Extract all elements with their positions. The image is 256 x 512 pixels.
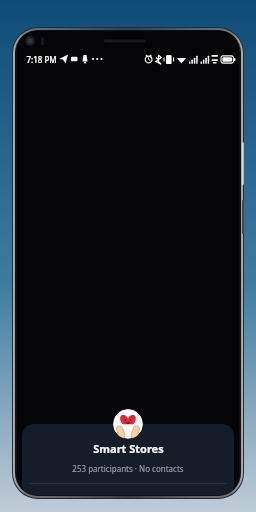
button[interactable]: Smart Stores: [22, 424, 234, 495]
staticText: 7:18 PM: [26, 54, 57, 65]
staticText: Smart Stores: [93, 441, 164, 456]
staticText: 253 participants · No contacts: [72, 463, 184, 474]
button[interactable]: Group photo: [113, 409, 143, 439]
